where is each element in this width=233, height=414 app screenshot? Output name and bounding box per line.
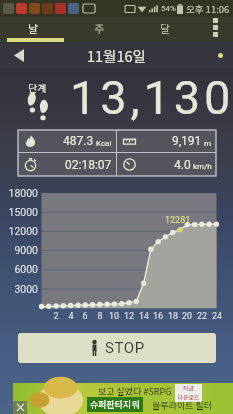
staticText: 주	[94, 20, 105, 36]
button[interactable]: 보고 싶었다 #SRPG	[13, 383, 233, 414]
staticText: STOP	[105, 339, 145, 357]
staticText: 지금 다운로드	[177, 384, 200, 402]
staticText: 15000	[0, 206, 38, 218]
button[interactable]: 02:18:07	[18, 153, 116, 176]
staticText: 487.3	[63, 134, 94, 148]
staticText: km/h	[193, 162, 212, 171]
button[interactable]: Next day	[212, 47, 228, 63]
button[interactable]: More options	[198, 17, 233, 42]
staticText: 오후 11:06	[186, 2, 230, 16]
staticText: 12281	[165, 215, 191, 226]
staticText: 3000	[0, 283, 38, 295]
staticText: 12	[119, 311, 139, 322]
staticText: 2	[46, 311, 66, 322]
staticText: 9000	[0, 244, 38, 256]
staticText: 14	[134, 311, 154, 322]
staticText: 9,191	[172, 134, 202, 148]
button[interactable]: Previous day	[6, 42, 32, 68]
staticText: 22	[192, 311, 212, 322]
button[interactable]: 주	[66, 17, 132, 42]
staticText: Kcal	[96, 139, 112, 148]
staticText: 16	[148, 311, 168, 322]
staticText: 18000	[0, 187, 38, 199]
button[interactable]: STOP	[18, 333, 216, 363]
staticText: 6000	[0, 263, 38, 275]
staticText: 24	[207, 311, 227, 322]
staticText: 11월16일	[87, 45, 146, 66]
staticText: 단계	[28, 80, 47, 94]
staticText: 슈퍼판타지워	[90, 398, 140, 411]
staticText: 12000	[0, 225, 38, 237]
button[interactable]: 4.0	[117, 153, 216, 176]
staticText: 4	[61, 311, 81, 322]
staticText: 02:18:07	[65, 158, 112, 172]
staticText: 달	[160, 20, 171, 36]
staticText: 블루라이트 필터	[152, 399, 212, 412]
staticText: m	[204, 139, 212, 148]
button[interactable]: Close ad	[13, 401, 27, 414]
staticText: 54%	[161, 4, 176, 13]
staticText: 10	[104, 311, 124, 322]
staticText: 날	[28, 20, 39, 36]
button[interactable]: 날	[0, 17, 66, 42]
button[interactable]: 달	[132, 17, 198, 42]
staticText: 18	[163, 311, 183, 322]
staticText: 13,130	[70, 70, 233, 125]
button[interactable]: 487.3	[18, 130, 116, 152]
staticText: 20	[177, 311, 197, 322]
staticText: 8	[90, 311, 110, 322]
staticText: 4.0	[174, 158, 191, 172]
button[interactable]: 9,191	[117, 130, 216, 152]
staticText: 보고 싶었다 #SRPG	[98, 385, 172, 398]
staticText: 6	[75, 311, 95, 322]
